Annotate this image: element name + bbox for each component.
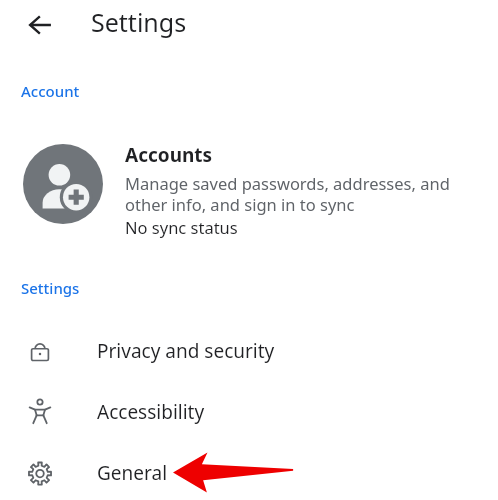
staticText: No sync status	[125, 216, 238, 238]
staticText: Settings	[21, 278, 80, 298]
button[interactable]: Privacy and security	[0, 321, 498, 381]
staticText: Privacy and security	[97, 338, 275, 364]
button[interactable]: Accessibility	[0, 382, 498, 442]
staticText: Settings	[91, 5, 187, 39]
staticText: Accounts	[125, 142, 213, 168]
staticText: Account	[21, 81, 80, 101]
button[interactable]: Back	[18, 3, 62, 47]
staticText: Manage saved passwords, addresses, and o…	[125, 172, 476, 216]
button[interactable]: Accounts	[0, 130, 498, 248]
button[interactable]: General	[0, 443, 498, 500]
staticText: Accessibility	[97, 399, 205, 425]
staticText: General	[97, 460, 168, 486]
